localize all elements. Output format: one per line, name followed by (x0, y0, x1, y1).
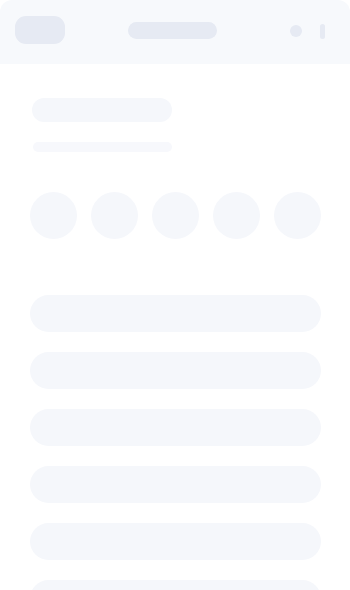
button[interactable]: Category 2 (91, 192, 138, 239)
button[interactable]: More options (320, 24, 325, 39)
button[interactable]: Search (290, 25, 302, 37)
button[interactable]: Category 3 (152, 192, 199, 239)
button[interactable]: Category 1 (30, 192, 77, 239)
button[interactable]: Category 4 (213, 192, 260, 239)
button[interactable]: Category 5 (274, 192, 321, 239)
button[interactable]: Menu (15, 16, 65, 44)
